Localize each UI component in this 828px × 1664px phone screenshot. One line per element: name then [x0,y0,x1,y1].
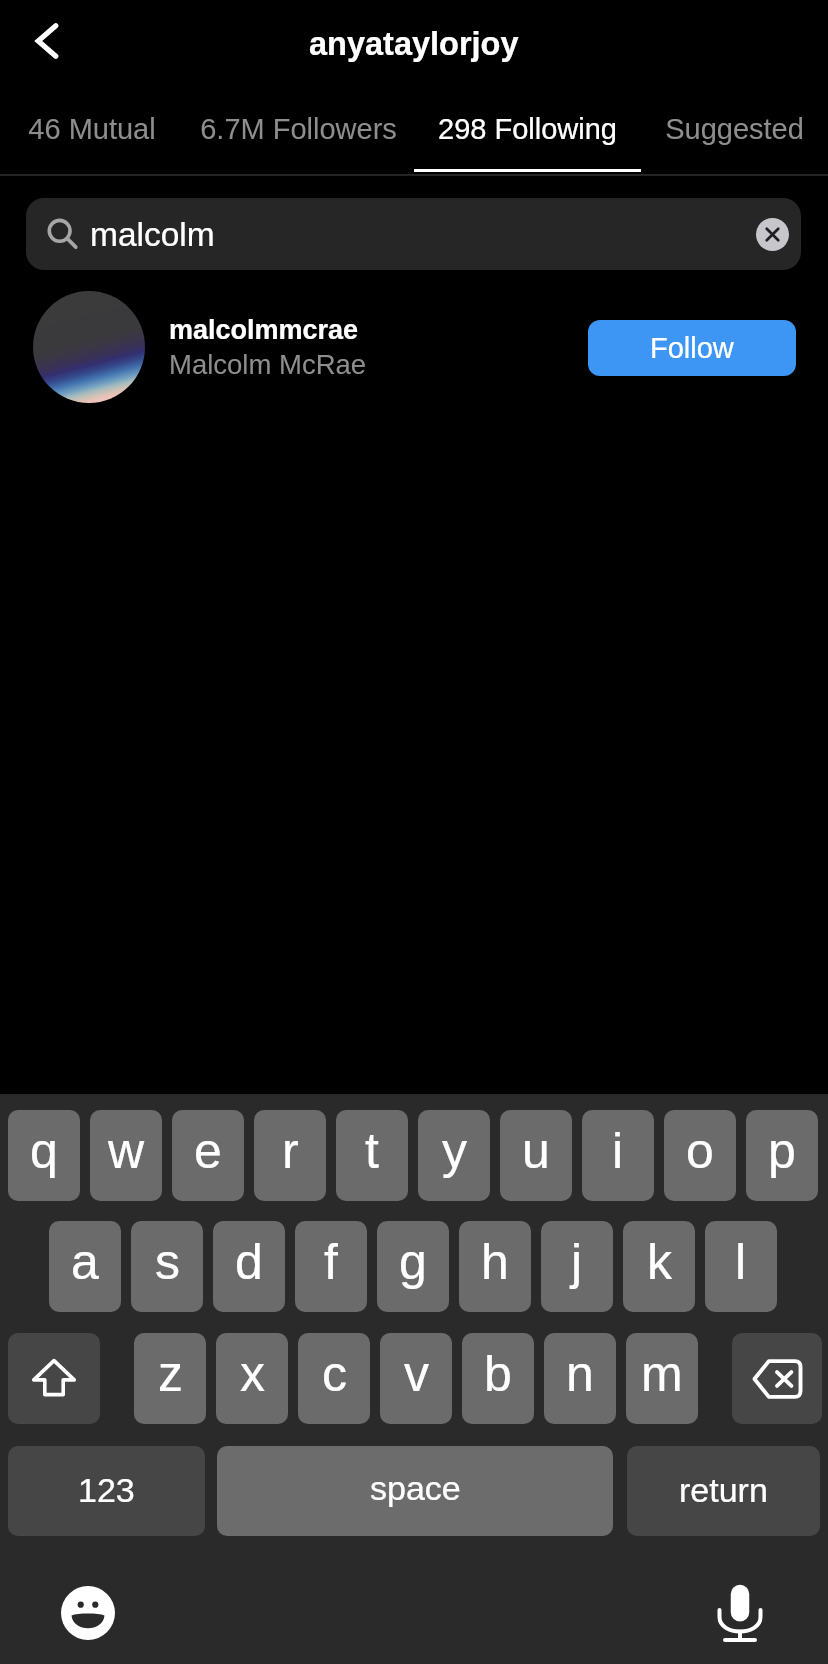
staticText: v [404,1346,429,1402]
staticText: o [686,1123,714,1179]
button[interactable]: i [582,1110,654,1201]
staticText: n [566,1346,594,1402]
staticText: u [522,1123,550,1179]
staticText: p [768,1123,796,1179]
staticText: 298 Following [438,113,617,145]
staticText: f [324,1234,338,1290]
button[interactable]: malcolmmcrae [0,285,828,410]
button[interactable]: e [172,1110,244,1201]
button[interactable]: t [336,1110,408,1201]
button[interactable]: j [541,1221,613,1312]
staticText: q [30,1123,58,1179]
button[interactable]: k [623,1221,695,1312]
staticText: h [481,1234,509,1290]
staticText: c [322,1346,347,1402]
button[interactable]: Suggested [641,90,828,175]
button[interactable]: Emoji keyboard [57,1582,119,1644]
button[interactable]: space [217,1446,613,1536]
staticText: 123 [78,1471,135,1509]
button[interactable]: 123 [8,1446,205,1536]
button[interactable]: a [49,1221,121,1312]
button[interactable]: Backspace [732,1333,822,1424]
button[interactable]: g [377,1221,449,1312]
button[interactable]: o [664,1110,736,1201]
button[interactable]: l [705,1221,777,1312]
staticText: k [647,1234,672,1290]
button[interactable]: p [746,1110,818,1201]
button[interactable]: z [134,1333,206,1424]
staticText: r [282,1123,299,1179]
button[interactable]: w [90,1110,162,1201]
staticText: 6.7M Followers [200,113,397,145]
staticText: return [679,1471,768,1509]
button[interactable]: Clear search [750,212,794,256]
staticText: w [108,1123,145,1179]
staticText: x [240,1346,265,1402]
staticText: a [71,1234,99,1290]
button[interactable]: Follow [588,320,796,376]
staticText: j [571,1234,583,1290]
button[interactable]: n [544,1333,616,1424]
staticText: s [155,1234,180,1290]
button[interactable]: 46 Mutual [0,90,183,175]
button[interactable]: x [216,1333,288,1424]
staticText: i [612,1123,624,1179]
button[interactable]: 298 Following [414,90,641,175]
staticText: l [735,1234,747,1290]
staticText: Malcolm McRae [169,349,367,380]
button[interactable]: c [298,1333,370,1424]
staticText: Follow [650,332,734,364]
button[interactable]: f [295,1221,367,1312]
button[interactable]: Back [13,7,81,75]
button[interactable]: m [626,1333,698,1424]
button[interactable]: u [500,1110,572,1201]
staticText: Suggested [665,113,804,145]
staticText: b [484,1346,512,1402]
staticText: z [158,1346,183,1402]
staticText: anyataylorjoy [309,26,519,62]
staticText: g [399,1234,427,1290]
button[interactable]: 6.7M Followers [183,90,414,175]
button[interactable]: malcolm [26,198,801,270]
staticText: malcolmmcrae [169,315,359,345]
button[interactable]: h [459,1221,531,1312]
staticText: e [194,1123,222,1179]
staticText: space [370,1469,461,1507]
button[interactable]: r [254,1110,326,1201]
staticText: t [365,1123,379,1179]
button[interactable]: b [462,1333,534,1424]
staticText: malcolm [90,216,215,253]
button[interactable]: Voice input [709,1582,771,1644]
button[interactable]: Shift [8,1333,100,1424]
staticText: y [442,1123,467,1179]
button[interactable]: return [627,1446,820,1536]
button[interactable]: q [8,1110,80,1201]
staticText: 46 Mutual [28,113,156,145]
button[interactable]: d [213,1221,285,1312]
staticText: d [235,1234,263,1290]
staticText: m [641,1346,683,1402]
button[interactable]: y [418,1110,490,1201]
button[interactable]: s [131,1221,203,1312]
button[interactable]: v [380,1333,452,1424]
